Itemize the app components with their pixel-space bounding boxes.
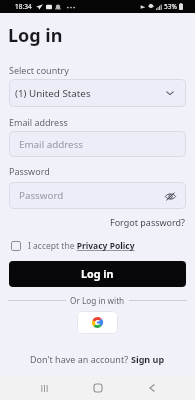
staticText: 18:34	[15, 2, 32, 11]
button[interactable]: (1) United States	[9, 79, 186, 107]
staticText: Log in	[8, 23, 63, 48]
button[interactable]: Password	[9, 182, 186, 209]
staticText: Forgot password?	[110, 216, 186, 228]
staticText: Sign up	[131, 353, 165, 365]
button[interactable]: Sign up	[131, 353, 165, 365]
staticText: Password	[19, 189, 64, 202]
staticText: Or Log in with	[70, 295, 125, 306]
button[interactable]: Forgot password?	[110, 216, 186, 228]
button[interactable]: Log in with Google	[77, 311, 118, 334]
staticText: Email address	[19, 138, 84, 151]
button[interactable]: Recent apps	[32, 376, 56, 400]
button[interactable]: I accept the Privacy Policy	[11, 240, 135, 252]
staticText: Log in	[81, 267, 114, 282]
staticText: Email address	[9, 116, 68, 128]
staticText: Password	[9, 165, 50, 177]
button[interactable]: Log in	[9, 261, 186, 287]
staticText: I accept the Privacy Policy	[28, 240, 135, 252]
button[interactable]: Show password	[163, 189, 177, 203]
button[interactable]: Home	[86, 376, 110, 400]
staticText: 53%	[164, 2, 177, 11]
button[interactable]: Email address	[9, 131, 186, 157]
staticText: (1) United States	[15, 87, 91, 100]
button[interactable]: Back	[140, 376, 164, 400]
staticText: Don't have an account?	[30, 353, 131, 365]
staticText: Select country	[9, 64, 69, 76]
